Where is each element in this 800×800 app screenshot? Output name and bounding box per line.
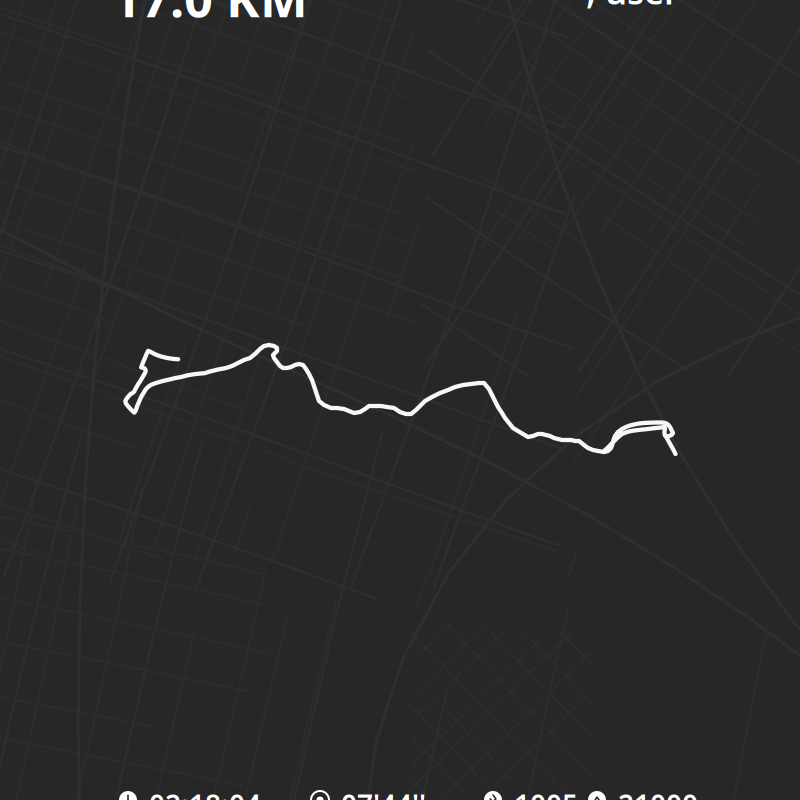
staticText: 1005 <box>514 786 578 800</box>
staticText: 07'44'' <box>341 786 426 800</box>
staticText: 21000 <box>618 786 698 800</box>
staticText: , user <box>586 0 679 14</box>
staticText: 02:18:04 <box>149 786 261 800</box>
staticText: 17.0 KM <box>112 0 308 31</box>
